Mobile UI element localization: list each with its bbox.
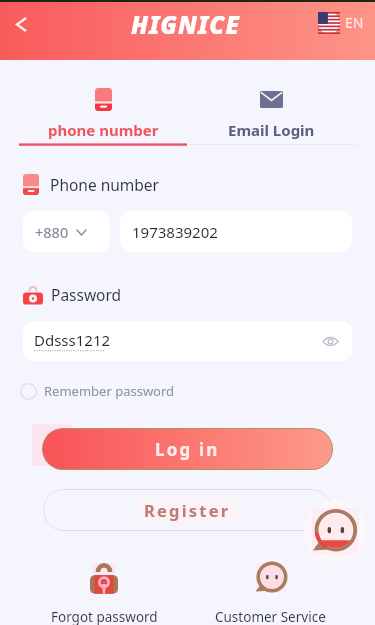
button[interactable]: Remember password [20,382,175,400]
staticText: Phone number [50,174,160,195]
staticText: Email Login [228,120,315,140]
staticText: Forgot password [51,608,158,625]
button[interactable]: Email Login [187,84,355,148]
button[interactable]: 1973839202 [120,211,352,252]
button[interactable]: Show password [317,328,343,354]
staticText: 1973839202 [132,222,218,242]
button[interactable]: Customer Service [187,561,354,625]
staticText: Remember password [44,382,175,400]
staticText: Ddsss1212 [34,330,111,350]
staticText: Customer Service [215,608,326,625]
button[interactable]: Forgot password [21,561,187,625]
button[interactable]: Register [43,489,332,531]
button[interactable]: +880 [23,211,110,252]
button[interactable]: Log in [43,429,332,469]
staticText: phone number [48,120,159,140]
button[interactable]: Back [3,6,39,42]
staticText: Password [51,284,122,305]
staticText: Register [144,499,231,521]
staticText: EN [345,13,364,32]
button[interactable]: phone number [20,84,187,148]
button[interactable]: Ddsss1212 [23,321,352,361]
button[interactable]: Customer support [304,500,366,562]
staticText: HIGNICE [131,8,240,41]
button[interactable]: EN [318,12,364,34]
staticText: +880 [35,222,69,242]
staticText: Log in [155,438,220,461]
